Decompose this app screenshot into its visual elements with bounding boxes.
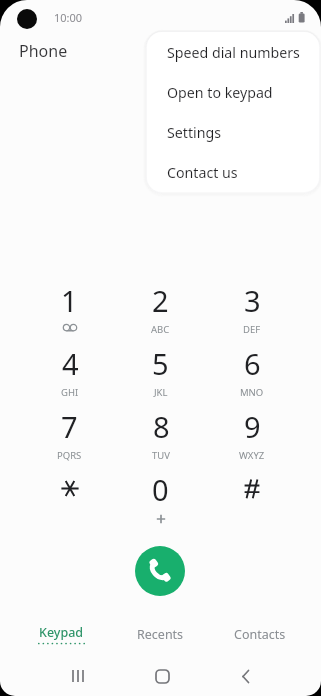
staticText: 7 xyxy=(61,407,78,446)
button[interactable]: Recent apps xyxy=(36,657,120,695)
staticText: WXYZ xyxy=(239,449,265,462)
staticText: MNO xyxy=(240,386,264,399)
button[interactable]: 0 xyxy=(115,470,206,533)
staticText: 10:00 xyxy=(54,10,83,25)
button[interactable]: 6 xyxy=(206,344,297,407)
staticText: 6 xyxy=(244,344,261,383)
staticText: 0 xyxy=(152,470,169,509)
staticText: 3 xyxy=(244,281,261,320)
staticText: Contact us xyxy=(167,163,238,182)
button[interactable]: 1 xyxy=(24,281,115,344)
staticText: Recents xyxy=(137,626,184,643)
button[interactable]: 4 xyxy=(24,344,115,407)
staticText: Contacts xyxy=(234,626,286,643)
button[interactable]: 5 xyxy=(115,344,206,407)
staticText: TUV xyxy=(152,449,170,462)
staticText: Open to keypad xyxy=(167,83,273,102)
button[interactable]: Settings xyxy=(147,112,319,152)
button[interactable]: Back xyxy=(204,657,288,695)
staticText: 4 xyxy=(62,344,79,383)
staticText: JKL xyxy=(154,386,168,399)
button[interactable]: Contacts xyxy=(210,611,309,657)
button[interactable] xyxy=(24,470,115,533)
staticText: PQRS xyxy=(57,449,82,462)
staticText: GHI xyxy=(61,386,79,399)
button[interactable] xyxy=(206,470,297,533)
staticText: 9 xyxy=(244,407,261,446)
button[interactable]: Open to keypad xyxy=(147,72,319,112)
button[interactable]: Home xyxy=(120,657,204,695)
staticText: 1 xyxy=(61,281,78,320)
button[interactable]: Contact us xyxy=(147,152,319,192)
button[interactable]: 8 xyxy=(115,407,206,470)
staticText: Speed dial numbers xyxy=(167,43,300,62)
button[interactable]: 2 xyxy=(115,281,206,344)
staticText: 8 xyxy=(153,407,170,446)
button[interactable]: Recents xyxy=(111,611,210,657)
staticText: DEF xyxy=(243,323,261,336)
button[interactable]: Call xyxy=(135,546,185,596)
staticText: Settings xyxy=(167,123,221,142)
button[interactable]: Keypad xyxy=(12,611,111,657)
staticText: 5 xyxy=(152,344,169,383)
staticText: Phone xyxy=(19,40,68,62)
button[interactable]: 7 xyxy=(24,407,115,470)
staticText: 2 xyxy=(152,281,169,320)
button[interactable]: 3 xyxy=(206,281,297,344)
staticText: ABC xyxy=(151,323,170,336)
button[interactable]: Speed dial numbers xyxy=(147,32,319,72)
button[interactable]: 9 xyxy=(206,407,297,470)
staticText: Keypad xyxy=(39,624,84,641)
